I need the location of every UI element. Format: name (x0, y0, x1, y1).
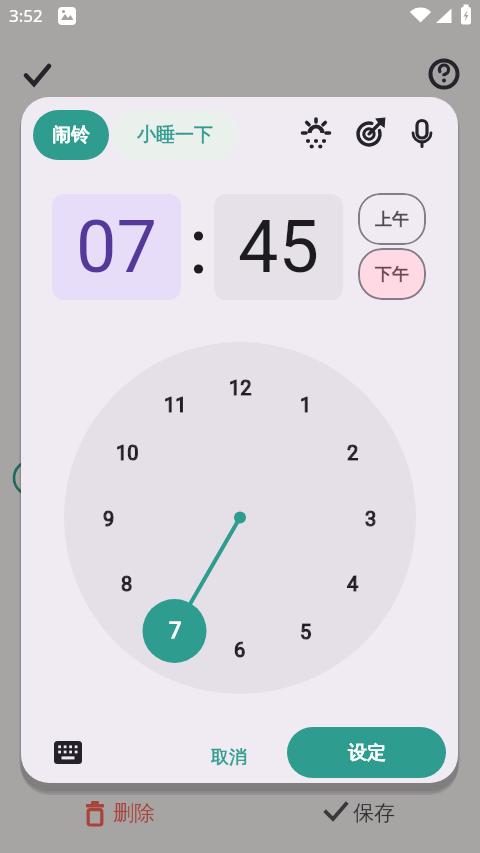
staticText: 9 (103, 507, 115, 530)
button[interactable]: 删除 (80, 796, 180, 836)
staticText: 5 (300, 620, 312, 643)
staticText: 12 (229, 376, 252, 399)
staticText: 设定 (348, 741, 386, 765)
button[interactable]: 闹铃 (33, 110, 109, 160)
staticText: 3 (365, 507, 377, 530)
button[interactable] (404, 116, 440, 152)
button[interactable] (352, 116, 388, 152)
staticText: 1 (300, 393, 312, 416)
button[interactable]: 保存 (318, 796, 418, 836)
button[interactable]: 取消 (193, 737, 265, 777)
staticText: 4 (347, 572, 359, 595)
staticText: 4 (347, 572, 359, 595)
staticText: 上午 (375, 209, 409, 230)
staticText: 删除 (113, 800, 155, 826)
staticText: 7 (169, 620, 181, 643)
staticText: 闹铃 (52, 123, 90, 147)
staticText: 7 (169, 618, 182, 644)
button[interactable]: 设定 (287, 727, 446, 778)
button[interactable]: 07 (52, 194, 181, 300)
staticText: 10 (116, 441, 139, 464)
staticText: 6 (234, 638, 246, 661)
staticText: 11 (164, 393, 187, 416)
staticText: 小睡一下 (137, 123, 213, 147)
staticText: 10 (116, 441, 139, 464)
staticText: 闹铃 (52, 123, 90, 147)
button[interactable] (46, 733, 90, 773)
button[interactable] (298, 116, 334, 152)
button[interactable] (18, 56, 58, 92)
staticText: 取消 (211, 746, 247, 769)
staticText: 45 (238, 205, 319, 289)
button[interactable]: 上午 (358, 193, 426, 245)
button[interactable]: 下午 (358, 248, 426, 300)
staticText: 5 (300, 620, 312, 643)
staticText: 8 (121, 572, 133, 595)
staticText: 2 (347, 441, 359, 464)
button[interactable] (427, 57, 461, 91)
staticText: 7 (169, 618, 182, 644)
staticText: 8 (121, 572, 133, 595)
staticText: 7 (169, 620, 181, 643)
staticText: 9 (103, 507, 115, 530)
staticText: 3:52 (9, 4, 43, 27)
button[interactable]: 小睡一下 (111, 110, 239, 160)
staticText: 1 (300, 393, 312, 416)
staticText: 下午 (375, 264, 409, 285)
staticText: 下午 (375, 264, 409, 285)
staticText: 上午 (375, 209, 409, 230)
staticText: 小睡一下 (137, 123, 213, 147)
staticText: 6 (234, 638, 246, 661)
staticText: 11 (164, 393, 187, 416)
staticText: 3 (365, 507, 377, 530)
staticText: 设定 (348, 741, 386, 765)
staticText: 2 (347, 441, 359, 464)
staticText: 保存 (353, 800, 395, 826)
staticText: 12 (229, 376, 252, 399)
staticText: 取消 (211, 746, 247, 769)
staticText: 07 (76, 205, 157, 289)
button[interactable]: 45 (214, 194, 343, 300)
